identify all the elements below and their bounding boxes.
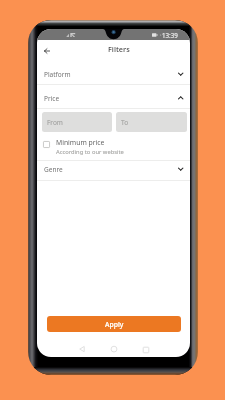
button[interactable]: Genre: [37, 160, 190, 178]
button[interactable]: Price: [37, 89, 190, 107]
staticText: 13:39: [162, 31, 178, 39]
button[interactable]: Platform: [37, 65, 190, 83]
button[interactable]: Recents: [137, 341, 155, 357]
button[interactable]: Back: [73, 340, 91, 357]
button[interactable]: To: [116, 112, 187, 132]
staticText: Genre: [44, 165, 63, 174]
staticText: Apply: [105, 320, 124, 329]
staticText: From: [47, 118, 63, 127]
button[interactable]: Back: [39, 43, 55, 59]
staticText: Filters: [108, 44, 130, 54]
button[interactable]: From: [42, 112, 112, 132]
button[interactable]: Apply: [47, 316, 181, 332]
button[interactable]: Home: [105, 340, 123, 357]
staticText: Price: [44, 94, 60, 103]
staticText: Minimum price: [56, 138, 105, 147]
button[interactable]: Minimum price: [37, 138, 190, 156]
staticText: To: [121, 118, 129, 127]
staticText: Platform: [44, 70, 71, 79]
staticText: According to our website: [56, 148, 124, 156]
